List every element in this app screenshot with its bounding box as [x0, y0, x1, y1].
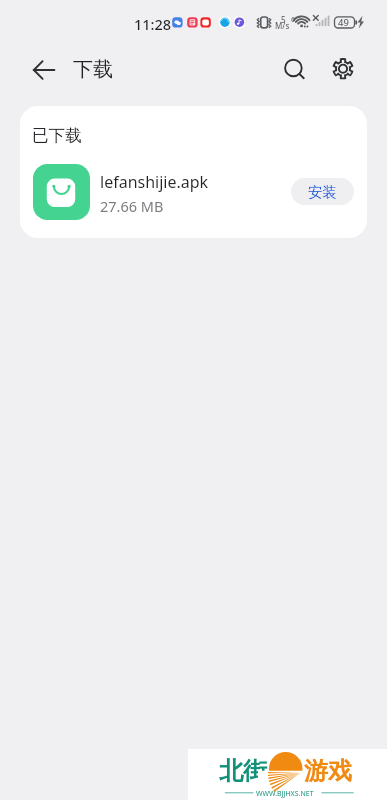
- staticText: 49: [338, 16, 349, 29]
- staticText: 下载: [73, 57, 113, 82]
- staticText: 北街: [219, 756, 267, 786]
- staticText: 11:28: [134, 14, 172, 34]
- staticText: 已下载: [32, 125, 82, 146]
- staticText: 安装: [308, 183, 337, 201]
- button[interactable]: lefanshijie.apk: [20, 159, 367, 224]
- staticText: M/s: [275, 20, 290, 31]
- staticText: 27.66 MB: [100, 196, 164, 216]
- button[interactable]: 安装: [291, 178, 354, 205]
- button[interactable]: Search: [272, 47, 317, 92]
- staticText: 5: [281, 14, 286, 25]
- staticText: 6: [291, 14, 296, 24]
- staticText: WWW.BJJHXS.NET: [256, 789, 314, 799]
- staticText: 游戏: [304, 756, 352, 786]
- staticText: lefanshijie.apk: [100, 171, 209, 193]
- button[interactable]: Settings: [320, 46, 365, 91]
- button[interactable]: Back: [22, 48, 66, 92]
